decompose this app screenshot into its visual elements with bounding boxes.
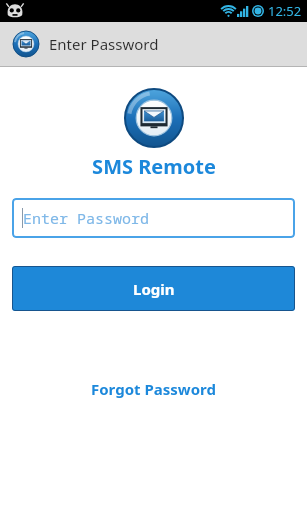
button[interactable]: Forgot Password [81, 373, 226, 405]
button[interactable]: Login [12, 266, 295, 311]
staticText: SMS Remote [92, 153, 216, 180]
staticText: Enter Password [23, 208, 150, 228]
staticText: Enter Password [49, 34, 159, 54]
staticText: Forgot Password [91, 379, 216, 399]
staticText: 12:52 [268, 2, 302, 20]
button[interactable]: Enter Password [12, 198, 295, 238]
staticText: Login [133, 279, 175, 299]
